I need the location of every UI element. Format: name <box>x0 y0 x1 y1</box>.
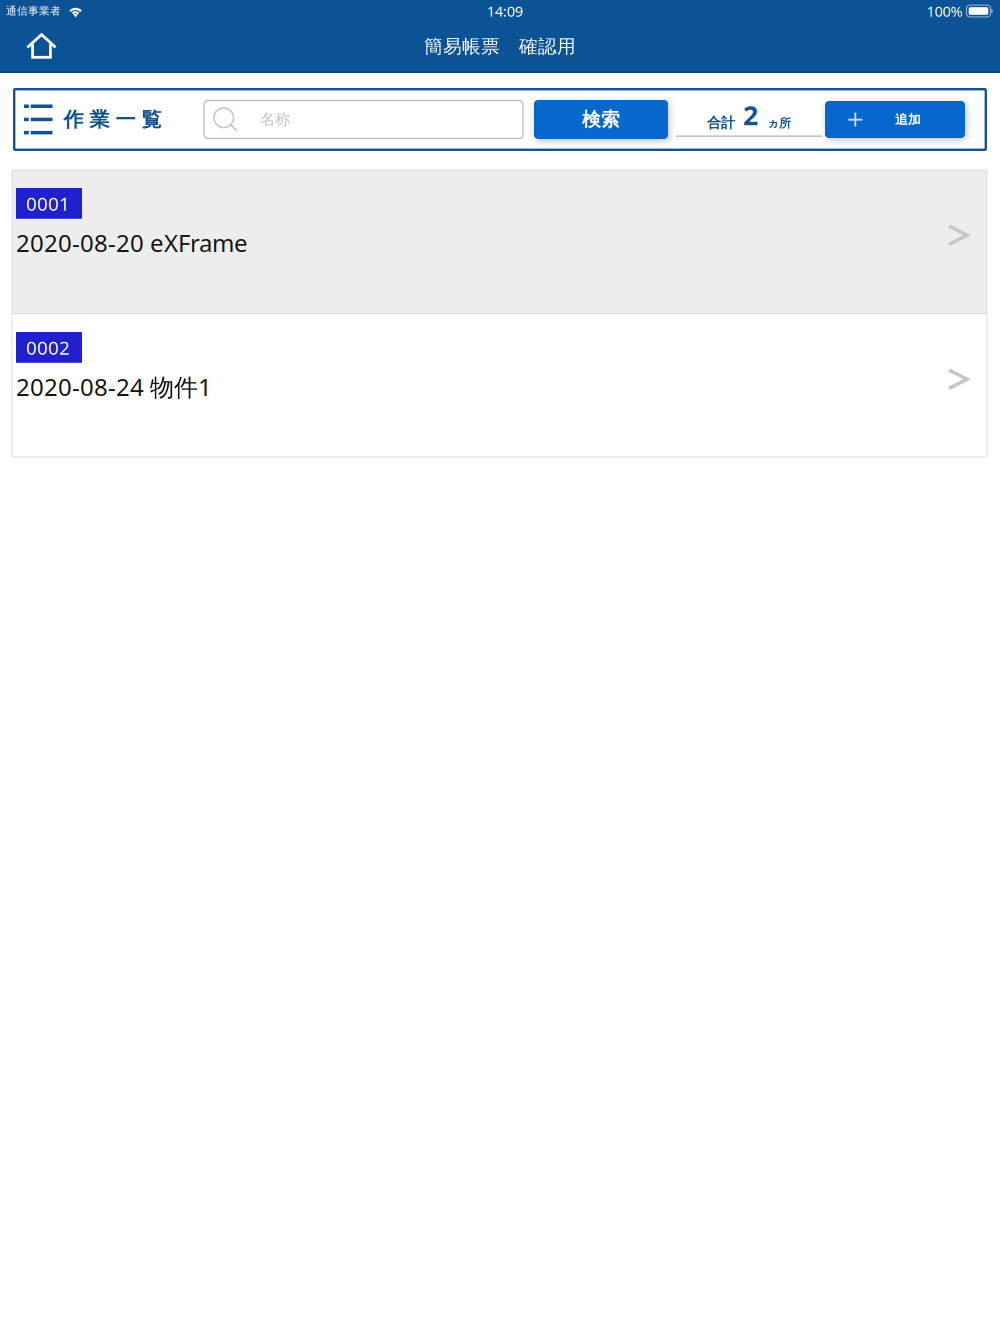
staticText: 14:09 <box>487 1 523 21</box>
staticText: 2 <box>743 97 758 133</box>
staticText: 検索 <box>582 108 620 131</box>
staticText: 100% <box>926 1 962 21</box>
staticText: 作 業 一 覧 <box>63 107 161 132</box>
staticText: 簡易帳票 確認用 <box>424 35 576 58</box>
staticText: 0001 <box>26 191 70 216</box>
staticText: 合計 <box>707 114 735 132</box>
staticText: 通信事業者 <box>6 4 61 18</box>
button[interactable]: 0002 <box>12 314 987 457</box>
button[interactable]: 検索 <box>534 100 668 139</box>
staticText: ヵ所 <box>767 116 791 131</box>
staticText: 2020-08-20 eXFrame <box>16 227 248 259</box>
staticText: 名称 <box>260 110 290 129</box>
staticText: 0002 <box>26 335 70 360</box>
button[interactable]: Home <box>0 22 79 71</box>
staticText: 追加 <box>895 111 921 127</box>
staticText: 2020-08-24 物件1 <box>16 371 212 403</box>
button[interactable]: 追加 <box>825 101 965 138</box>
button[interactable]: 0001 <box>12 170 987 313</box>
